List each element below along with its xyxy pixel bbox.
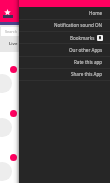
staticText: Live xyxy=(9,41,18,47)
button[interactable] xyxy=(0,52,110,96)
staticText: Rate this app xyxy=(74,59,103,65)
staticText: Our other Apps xyxy=(69,47,103,53)
staticText: Home xyxy=(89,10,103,16)
button[interactable] xyxy=(0,140,110,183)
button[interactable] xyxy=(0,96,110,140)
button[interactable]: Apps xyxy=(82,36,110,52)
button[interactable]: Our other Apps xyxy=(19,44,110,56)
button[interactable]: Home xyxy=(19,7,110,19)
other: App logo xyxy=(4,9,11,16)
button[interactable]: Rate this app xyxy=(19,56,110,68)
staticText: Search xyxy=(5,29,18,34)
button[interactable]: Bookmarks xyxy=(19,32,110,44)
staticText: Share this App xyxy=(71,71,103,77)
staticText: Bookmarks xyxy=(70,35,95,41)
staticText: Top xyxy=(37,41,45,47)
other: Bookmarks xyxy=(97,35,103,41)
button[interactable]: Live xyxy=(0,36,27,52)
button[interactable]: Share this App xyxy=(19,68,110,80)
staticText: News xyxy=(62,41,74,47)
button[interactable]: News xyxy=(54,36,82,52)
button[interactable]: Notification sound ON xyxy=(19,19,110,31)
staticText: Notification sound ON xyxy=(54,22,103,28)
staticText: Apps xyxy=(91,41,102,47)
